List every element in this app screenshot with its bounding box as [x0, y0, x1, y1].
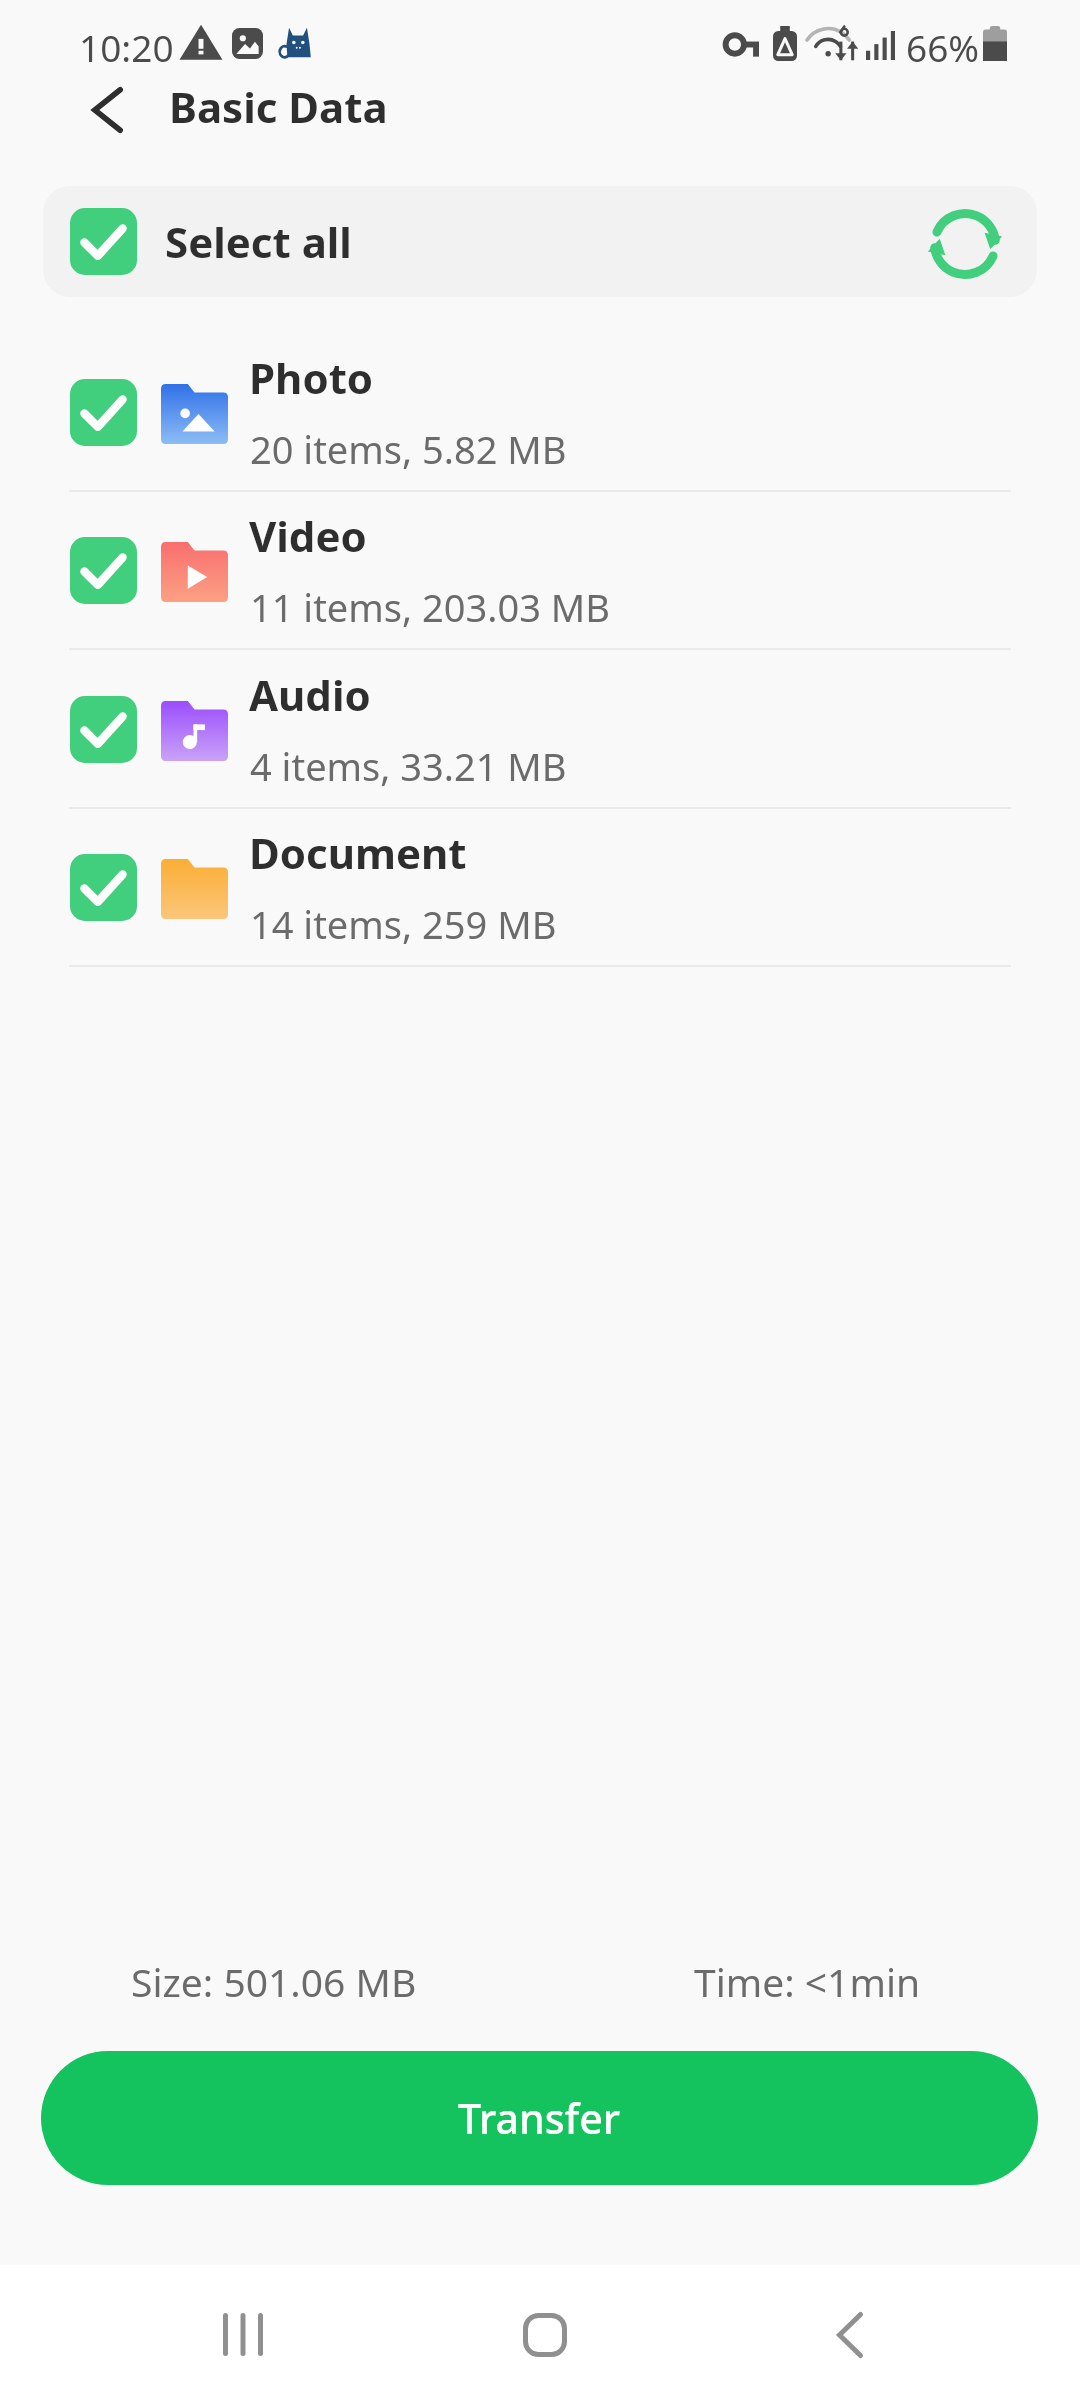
button[interactable]: Back	[66, 62, 148, 158]
button[interactable]: Transfer	[41, 2051, 1038, 2185]
button[interactable]: Recent apps	[183, 2267, 303, 2400]
button[interactable]: Select all	[70, 208, 137, 275]
button[interactable]: Select Document	[0, 809, 1080, 967]
staticText: 4 items, 33.21 MB	[250, 740, 567, 792]
staticText: 20 items, 5.82 MB	[250, 423, 567, 475]
staticText: Document	[249, 824, 467, 881]
staticText: Size: 501.06 MB	[131, 1955, 417, 2008]
staticText: Audio	[249, 666, 371, 723]
button[interactable]: Select all	[43, 186, 1037, 297]
staticText: Video	[249, 507, 367, 564]
button[interactable]: Home	[485, 2267, 605, 2400]
button[interactable]: Select Video	[70, 537, 137, 604]
staticText: Basic Data	[169, 78, 388, 135]
staticText: 10:20	[79, 22, 174, 72]
staticText: Select all	[165, 213, 352, 270]
button[interactable]: Select Photo	[70, 379, 137, 446]
button[interactable]: Back	[790, 2267, 910, 2400]
staticText: Transfer	[458, 2090, 621, 2146]
staticText: Photo	[249, 349, 374, 406]
staticText: 66%	[906, 22, 980, 72]
staticText: 14 items, 259 MB	[250, 898, 557, 950]
button[interactable]: Select Audio	[70, 696, 137, 763]
button[interactable]: Select Audio	[0, 651, 1080, 809]
button[interactable]: Select Video	[0, 492, 1080, 650]
button[interactable]: Select Document	[70, 854, 137, 921]
staticText: Time: <1min	[694, 1955, 921, 2008]
staticText: 11 items, 203.03 MB	[250, 581, 611, 633]
button[interactable]: Refresh	[920, 199, 1010, 289]
button[interactable]: Select Photo	[0, 334, 1080, 492]
